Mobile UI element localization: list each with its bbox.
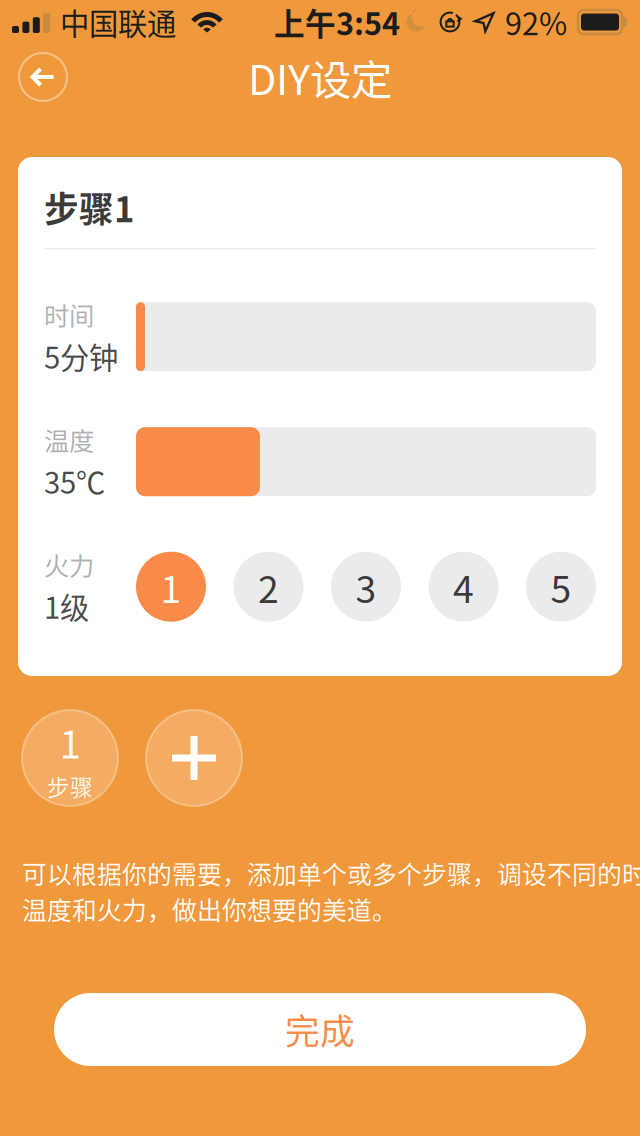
staticText: 可以根据你的需要，添加单个或多个步骤，调设不同的时间、 [22,855,640,891]
staticText: 92% [505,0,567,44]
staticText: 5 [550,560,571,614]
staticText: 完成 [285,1004,355,1055]
staticText: 温度 [44,421,94,458]
staticText: 1级 [44,585,89,627]
button[interactable]: 2 [233,552,303,622]
button[interactable]: 4 [428,552,498,622]
button[interactable]: 1 [136,552,206,622]
staticText: 4 [453,560,474,614]
staticText: 2 [258,560,279,614]
staticText: 3 [355,560,376,614]
staticText: DIY设定 [248,47,392,107]
button[interactable]: Add step [146,710,242,806]
staticText: 步骤 [47,770,93,802]
staticText: 步骤1 [44,182,134,232]
staticText: 1 [160,560,181,614]
staticText: 时间 [44,296,94,333]
staticText: 火力 [44,546,94,583]
button[interactable]: 5 [526,552,596,622]
button[interactable]: 完成 [54,993,586,1066]
staticText: 1 [59,714,80,770]
button[interactable]: 1 [22,710,118,806]
staticText: 5分钟 [44,335,118,377]
staticText: 中国联通 [60,1,176,43]
staticText: 上午3:54 [274,0,400,44]
button[interactable]: Back [19,53,67,101]
button[interactable]: 3 [331,552,401,622]
staticText: 35℃ [44,460,105,502]
staticText: 温度和火力，做出你想要的美道。 [22,891,397,927]
